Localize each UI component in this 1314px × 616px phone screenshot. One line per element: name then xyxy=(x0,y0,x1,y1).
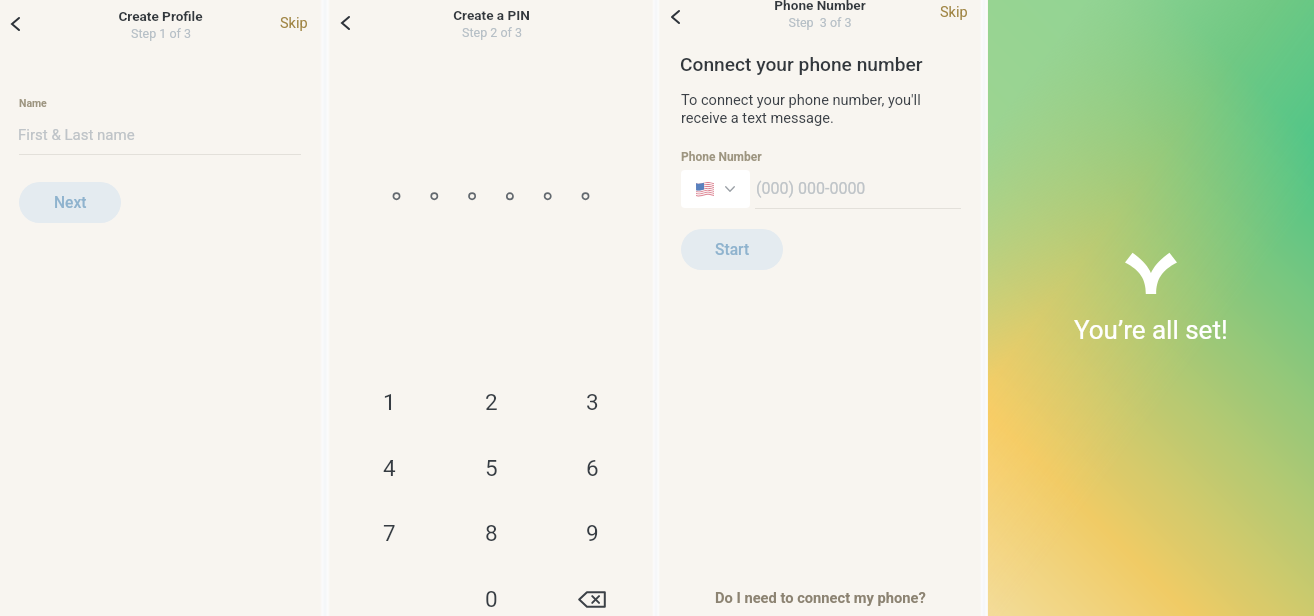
staticText: Step 1 of 3 xyxy=(131,26,191,41)
button[interactable]: 6 xyxy=(552,436,632,500)
staticText: Phone Number xyxy=(681,150,762,164)
staticText: 8 xyxy=(485,520,498,546)
staticText: Skip xyxy=(940,4,968,21)
button[interactable]: Do I need to connect my phone? xyxy=(709,586,932,609)
button[interactable]: Back xyxy=(663,5,687,29)
staticText: Skip xyxy=(280,15,308,32)
staticText: Name xyxy=(19,97,47,109)
button[interactable]: Select country code xyxy=(681,170,750,208)
staticText: 5 xyxy=(485,455,498,481)
staticText: To connect your phone number, you'll rec… xyxy=(681,91,921,126)
button[interactable]: Skip xyxy=(276,12,312,35)
staticText: 6 xyxy=(586,455,599,481)
button[interactable]: 0 xyxy=(451,567,531,616)
staticText: Phone Number xyxy=(774,0,866,13)
staticText: Connect your phone number xyxy=(680,53,923,76)
staticText: Do I need to connect my phone? xyxy=(715,589,926,606)
button[interactable]: Start xyxy=(681,229,783,270)
staticText: (000) 000-0000 xyxy=(756,179,866,198)
staticText: You’re all set! xyxy=(1074,315,1228,345)
staticText: 1 xyxy=(383,389,396,415)
staticText: Step 3 of 3 xyxy=(788,15,852,30)
button[interactable]: 3 xyxy=(552,370,632,434)
button[interactable]: 2 xyxy=(451,370,531,434)
staticText: 4 xyxy=(383,455,396,481)
staticText: 9 xyxy=(586,520,599,546)
staticText: Next xyxy=(54,194,87,212)
button[interactable]: 1 xyxy=(349,370,429,434)
button[interactable]: 8 xyxy=(451,501,531,565)
button[interactable]: 7 xyxy=(349,501,429,565)
staticText: 2 xyxy=(485,389,498,415)
other: Backspace xyxy=(578,591,606,608)
staticText: 0 xyxy=(485,586,498,612)
staticText: Start xyxy=(715,241,750,259)
staticText: 3 xyxy=(586,389,599,415)
staticText: Create a PIN xyxy=(453,7,530,23)
button[interactable]: 4 xyxy=(349,436,429,500)
button[interactable]: 5 xyxy=(451,436,531,500)
button[interactable]: Back xyxy=(3,12,27,36)
button[interactable]: Next xyxy=(19,182,121,223)
staticText: Create Profile xyxy=(118,8,203,24)
button[interactable]: Skip xyxy=(936,1,972,24)
staticText: 7 xyxy=(383,520,396,546)
button[interactable]: Back xyxy=(333,11,357,35)
staticText: First & Last name xyxy=(18,126,135,144)
staticText: Step 2 of 3 xyxy=(462,25,522,40)
button[interactable]: Backspace xyxy=(552,567,632,616)
button[interactable]: 9 xyxy=(552,501,632,565)
